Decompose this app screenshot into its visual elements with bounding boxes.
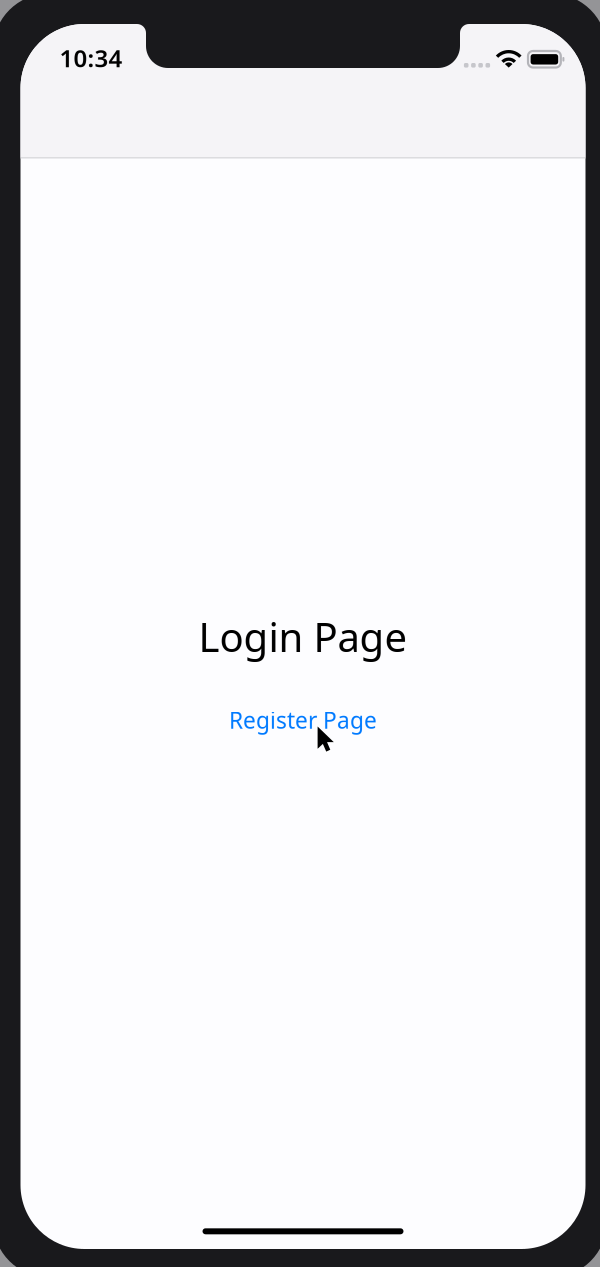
button[interactable]: Register Page: [217, 699, 389, 741]
staticText: Register Page: [229, 705, 377, 735]
staticText: Login Page: [198, 610, 407, 663]
staticText: 10:34: [59, 42, 122, 74]
